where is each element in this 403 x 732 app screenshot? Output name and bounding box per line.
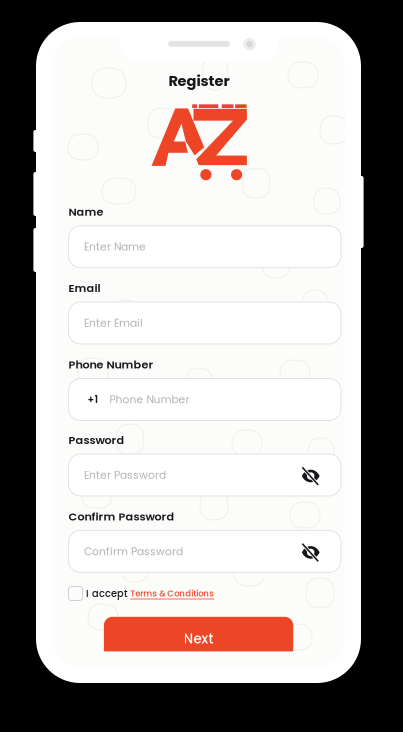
staticText: Phone Number (68, 357, 153, 373)
staticText: Next (184, 629, 214, 648)
staticText: Register (168, 71, 229, 91)
staticText: I accept (86, 587, 128, 600)
staticText: Confirm Password (68, 509, 174, 524)
button[interactable]: Accept terms checkbox (68, 586, 82, 600)
staticText: Enter Email (84, 315, 143, 330)
staticText: Email (68, 280, 100, 296)
staticText: Enter Name (84, 239, 146, 254)
button[interactable]: Next (104, 617, 293, 651)
staticText: Enter Password (84, 467, 166, 482)
staticText: Phone Number (109, 392, 189, 407)
staticText: Password (68, 432, 124, 448)
staticText: Confirm Password (84, 544, 183, 559)
staticText: +1 (87, 393, 98, 406)
staticText: Name (68, 204, 103, 220)
staticText: Terms & Conditions (130, 587, 214, 599)
button[interactable]: Terms & Conditions (128, 587, 214, 599)
